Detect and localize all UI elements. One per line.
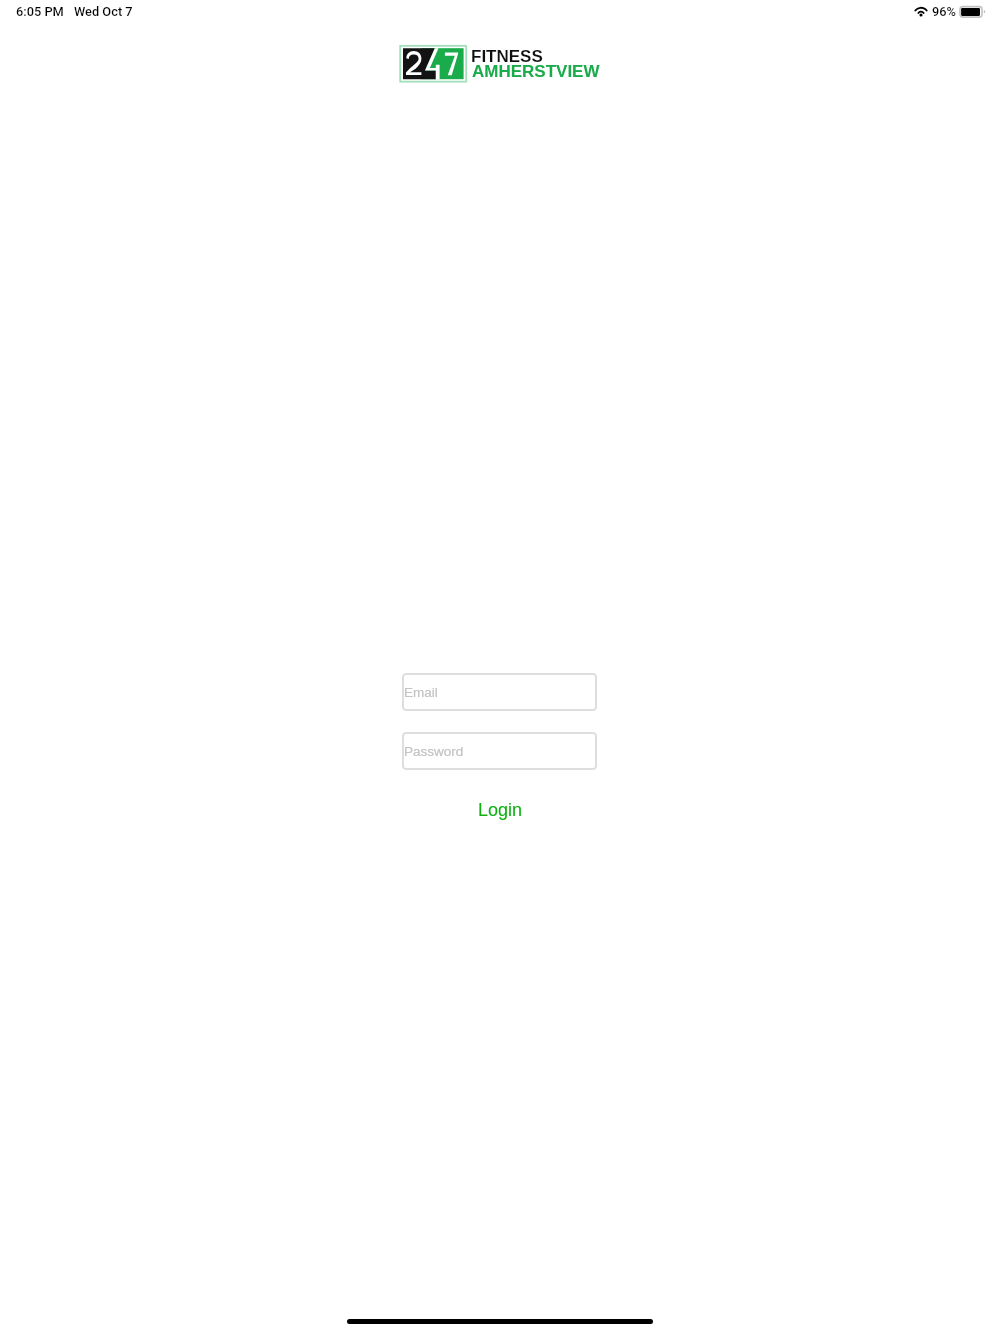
staticText: Login	[478, 800, 523, 820]
staticText: AMHERSTVIEW	[472, 62, 600, 81]
button[interactable]: Email	[402, 673, 597, 711]
other: 24/7 Fitness Amherstview logo	[398, 44, 470, 86]
button[interactable]: Login	[464, 792, 537, 828]
staticText: Password	[404, 744, 464, 759]
other: Battery 96 percent	[958, 5, 986, 19]
staticText: 96%	[932, 4, 956, 19]
button[interactable]: Password	[402, 732, 597, 770]
staticText: Email	[404, 685, 438, 700]
other: Wi-Fi	[913, 5, 929, 18]
staticText: 6:05 PM	[16, 4, 64, 19]
staticText: FITNESS	[471, 47, 543, 66]
staticText: Wed Oct 7	[74, 4, 133, 19]
